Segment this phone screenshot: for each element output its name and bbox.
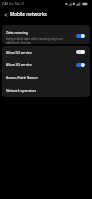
button[interactable]: Toggle: [76, 34, 85, 38]
staticText: Allow 2G service: [6, 62, 32, 67]
staticText: Access Point Names: [6, 75, 38, 80]
staticText: Network operators: [6, 88, 37, 93]
button[interactable]: Allow 5G service: [2, 46, 90, 58]
button[interactable]: Toggle: [76, 50, 85, 54]
staticText: Data roaming: [6, 30, 28, 35]
staticText: Allow 5G service: [6, 50, 32, 55]
button[interactable]: Allow 2G service: [2, 58, 90, 71]
staticText: 7:40: [2, 2, 8, 6]
staticText: Using mobile data while roaming may incu…: [6, 37, 64, 44]
staticText: Sun Mar 31: [9, 2, 25, 6]
button[interactable]: Toggle: [76, 63, 85, 67]
button[interactable]: Access Point Names: [2, 71, 90, 84]
button[interactable]: Data roaming: [2, 25, 90, 44]
button[interactable]: Network operators: [2, 84, 90, 97]
button[interactable]: Back: [2, 11, 9, 18]
staticText: Mobile networks: [10, 11, 47, 17]
